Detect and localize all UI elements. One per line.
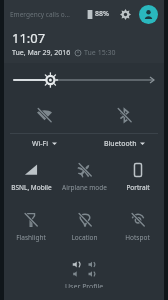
staticText: BSNL, Mobile — [11, 183, 52, 192]
button[interactable]: User Profile — [4, 282, 164, 300]
staticText: 88% — [95, 9, 109, 19]
staticText: Airplane mode — [62, 183, 107, 192]
staticText: Tue, Mar 29, 2016 — [12, 48, 71, 58]
staticText: Wi-Fi — [32, 139, 49, 149]
button[interactable]: Brightness — [4, 69, 164, 91]
staticText: Emergency calls o… — [10, 10, 87, 19]
button[interactable]: Portrait — [111, 152, 164, 202]
button[interactable]: Bluetooth — [84, 135, 164, 152]
staticText: 11:07 — [12, 29, 46, 47]
button[interactable]: Bluetooth — [84, 99, 164, 132]
button[interactable]: Hotspot — [111, 202, 164, 252]
button[interactable]: Wi-Fi — [4, 135, 84, 152]
staticText: Flashlight — [16, 233, 46, 242]
button[interactable]: Settings — [117, 6, 133, 22]
button[interactable]: User account — [139, 5, 158, 24]
staticText: Bluetooth — [104, 139, 137, 149]
staticText: Hotspot — [125, 233, 150, 242]
button[interactable]: BSNL, Mobile — [4, 152, 58, 202]
button[interactable]: Airplane mode — [58, 152, 111, 202]
button[interactable]: Wifi — [4, 99, 84, 132]
button[interactable]: Volume — [4, 256, 164, 282]
staticText: Portrait — [126, 183, 150, 192]
button[interactable]: Location — [58, 202, 111, 252]
staticText: Location — [71, 233, 98, 242]
staticText: Tue 15:30 — [84, 48, 116, 58]
staticText: User Profile — [65, 282, 104, 288]
button[interactable]: Flashlight — [4, 202, 58, 252]
